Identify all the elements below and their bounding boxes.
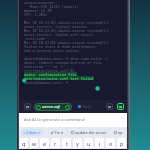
button[interactable]: w	[30, 138, 38, 148]
staticText: 'exit-code'.	[24, 36, 50, 40]
button[interactable]: up	[113, 130, 124, 135]
button[interactable]: t	[62, 138, 71, 148]
button[interactable]: i	[95, 138, 104, 148]
staticText: memory: 54.2M	[24, 8, 52, 12]
staticText: + 3 lines	[23, 130, 37, 135]
staticText: y	[76, 140, 79, 147]
button[interactable]: Ask AI to generate a command	[24, 113, 122, 127]
staticText: p	[120, 140, 124, 147]
button[interactable]: Fix it	[50, 130, 65, 135]
staticText: May 10 10:21:04 ubuntu-server systemd[1]…	[24, 28, 111, 32]
staticText: expecting ";" or "}"	[24, 64, 66, 68]
staticText: /etc/nginx/nginx.conf test failed	[24, 76, 94, 80]
staticText: e	[43, 140, 47, 147]
staticText: and a reverse proxy server.	[24, 48, 81, 52]
staticText: i	[99, 140, 101, 147]
button[interactable]: Keyboard	[106, 103, 113, 110]
button[interactable]: + 3 lines	[23, 129, 41, 136]
button[interactable]: r	[51, 138, 60, 148]
staticText: /etc/nginx/nginx.conf:45	[24, 68, 75, 72]
button[interactable]: q	[20, 138, 28, 148]
button[interactable]: Menu	[24, 103, 31, 110]
staticText: serve.sql	[42, 104, 60, 110]
staticText: May 10 10:21:04 ubuntu-server systemd[1]…	[24, 40, 111, 44]
button[interactable]: update the server	[70, 130, 108, 135]
staticText: o	[109, 140, 113, 147]
staticText: Failed to start A high performance	[24, 44, 96, 48]
button[interactable]: e	[40, 138, 49, 148]
button[interactable]: serve.sql	[36, 103, 70, 111]
staticText: bash	[83, 104, 92, 109]
staticText: Main PID 12345 (nodejs)	[24, 4, 79, 8]
button[interactable]: p	[117, 138, 126, 148]
staticText: status=running	[24, 0, 54, 4]
staticText: w	[32, 140, 37, 147]
staticText: t	[66, 140, 68, 147]
staticText: u	[87, 140, 91, 147]
staticText: Fix it	[55, 130, 64, 135]
staticText: ubuntu@ubuntu-host:~$	[24, 80, 69, 84]
staticText: nginx.service: Failed with result	[24, 32, 94, 36]
staticText: r	[54, 140, 57, 147]
button[interactable]: y	[73, 138, 82, 148]
staticText: update the server	[75, 130, 107, 135]
staticText: ubuntu@ubuntu-host:~$ what sudo nginx -t	[24, 56, 108, 60]
button[interactable]: u	[84, 138, 93, 148]
staticText: up	[118, 130, 123, 135]
staticText: nginx: [emerg] unexpected end of file	[24, 60, 102, 64]
staticText: May 10 10:21:03 ubuntu-server systemd[1]…	[24, 20, 111, 24]
staticText: Ask AI to generate a command	[24, 117, 85, 123]
staticText: CPU: 1.204s	[24, 12, 48, 16]
button[interactable]: o	[106, 138, 115, 148]
staticText: q	[22, 140, 26, 147]
button[interactable]: New tab	[117, 103, 124, 110]
staticText: ×	[38, 130, 41, 135]
staticText: nginx.service: Control process	[24, 24, 87, 28]
staticText: nginx: configuration file	[24, 72, 77, 76]
